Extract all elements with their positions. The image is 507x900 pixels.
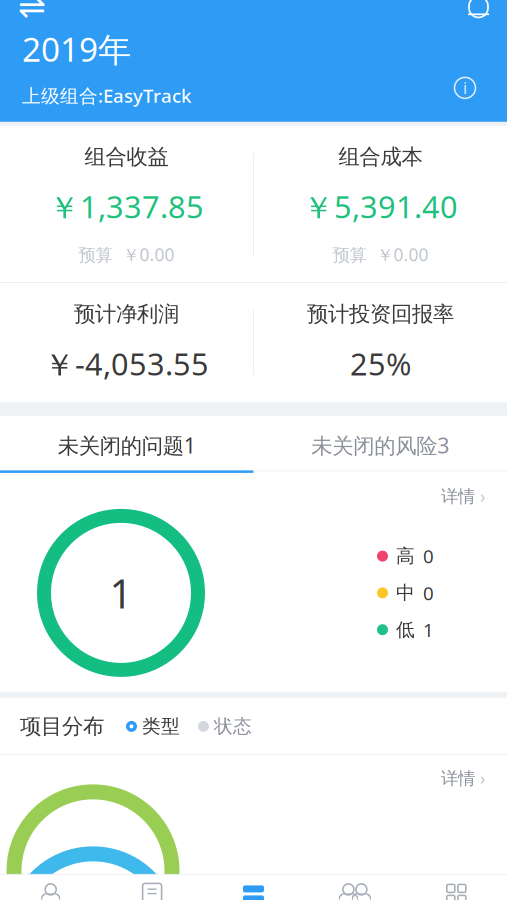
staticText: 高 (396, 545, 415, 567)
button[interactable]: Switch (18, 0, 62, 27)
staticText: ￥1,337.85 (49, 186, 204, 227)
staticText: 预算 ￥0.00 (332, 243, 428, 266)
button[interactable]: 类型 (126, 712, 180, 741)
staticText: 状态 (214, 715, 252, 738)
button[interactable]: Notifications (445, 0, 489, 27)
staticText: 详情 (441, 768, 475, 789)
staticText: 低 (396, 618, 415, 641)
staticText: 0 (423, 580, 434, 605)
staticText: ⇌ (18, 0, 46, 26)
staticText: 0 (423, 544, 434, 568)
staticText: i (463, 77, 467, 98)
staticText: 预计净利润 (74, 301, 179, 327)
staticText: ￥5,391.40 (303, 186, 458, 227)
staticText: 组合收益 (84, 144, 168, 170)
staticText: 1 (109, 566, 132, 619)
button[interactable]: 未关闭的风险3 (253, 416, 507, 473)
button[interactable]: 项目 (101, 875, 203, 900)
button[interactable]: 详情 (437, 765, 489, 792)
staticText: 组合成本 (338, 144, 422, 170)
staticText: › (480, 767, 485, 790)
button[interactable]: 团队 (304, 875, 406, 900)
staticText: 类型 (142, 715, 180, 738)
staticText: 未关闭的问题1 (58, 431, 196, 459)
button[interactable]: Information (445, 68, 485, 108)
staticText: 预计投资回报率 (307, 301, 454, 327)
staticText: › (480, 485, 485, 508)
staticText: 中 (396, 581, 415, 604)
button[interactable]: 更多 (406, 875, 507, 900)
button[interactable]: 状态 (198, 712, 252, 741)
button[interactable]: 我的 (0, 875, 101, 900)
staticText: 1 (423, 617, 434, 642)
staticText: 详情 (441, 486, 475, 507)
staticText: ￥-4,053.55 (44, 343, 209, 384)
staticText: 未关闭的风险3 (311, 431, 449, 459)
button[interactable]: 组合 (203, 875, 304, 900)
staticText: 项目分布 (20, 713, 104, 739)
button[interactable]: 详情 (437, 483, 489, 510)
staticText: 预算 ￥0.00 (78, 243, 174, 266)
staticText: 上级组合:EasyTrack (22, 83, 191, 108)
staticText: 2019年 (22, 27, 131, 71)
staticText: 25% (350, 343, 411, 384)
button[interactable]: 未关闭的问题1 (0, 416, 253, 473)
